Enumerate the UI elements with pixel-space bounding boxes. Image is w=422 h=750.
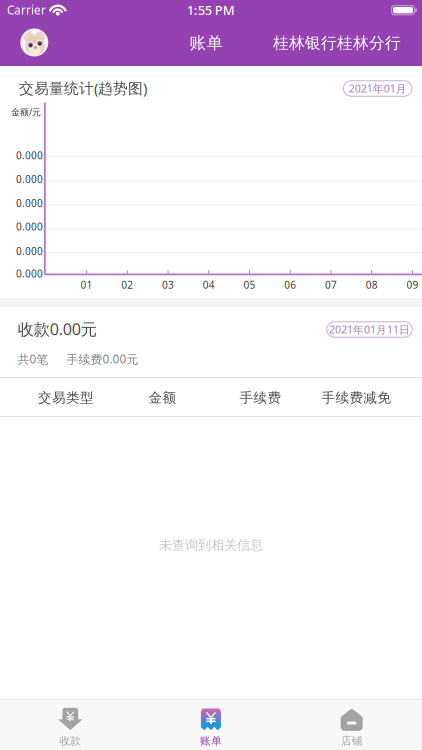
staticText: 03: [162, 278, 174, 292]
button[interactable]: 2021年01月: [343, 81, 412, 96]
staticText: 04: [203, 278, 215, 292]
staticText: 未查询到相关信息: [159, 537, 263, 553]
staticText: 0.000: [16, 148, 43, 162]
staticText: 账单: [200, 734, 222, 748]
staticText: 收款0.00元: [18, 318, 97, 340]
staticText: 0.000: [16, 267, 43, 281]
button[interactable]: 账单: [141, 700, 281, 750]
staticText: 08: [366, 278, 378, 292]
staticText: 09: [406, 278, 418, 292]
staticText: 交易类型: [38, 389, 94, 406]
staticText: 05: [243, 278, 255, 292]
staticText: 0.000: [16, 244, 43, 258]
button[interactable]: 店铺: [281, 700, 422, 750]
staticText: 手续费0.00元: [66, 351, 138, 367]
staticText: 0.000: [16, 220, 43, 234]
staticText: 2021年01月: [349, 81, 407, 96]
staticText: 07: [325, 278, 337, 292]
staticText: 0.000: [16, 172, 43, 186]
staticText: 01: [81, 278, 93, 292]
staticText: 店铺: [341, 734, 363, 748]
staticText: 金额: [148, 389, 176, 406]
staticText: 06: [284, 278, 296, 292]
button[interactable]: 桂林银行桂林分行: [271, 23, 403, 63]
button[interactable]: 账单: [183, 23, 229, 63]
staticText: 1:55 PM: [187, 1, 235, 19]
staticText: 手续费减免: [321, 389, 391, 406]
staticText: 共0笔: [17, 351, 48, 367]
staticText: 账单: [189, 33, 223, 53]
staticText: 0.000: [16, 196, 43, 210]
staticText: 02: [121, 278, 133, 292]
staticText: 桂林银行桂林分行: [273, 33, 401, 53]
staticText: 金额/元: [11, 106, 41, 118]
button[interactable]: 个人中心: [20, 28, 48, 56]
staticText: 收款: [59, 734, 81, 748]
button[interactable]: 2021年01月11日: [327, 322, 412, 337]
staticText: 2021年01月11日: [329, 322, 410, 337]
staticText: 交易量统计(趋势图): [19, 78, 147, 98]
staticText: 手续费: [239, 389, 281, 406]
staticText: Carrier: [7, 2, 46, 18]
button[interactable]: 收款: [0, 700, 141, 750]
